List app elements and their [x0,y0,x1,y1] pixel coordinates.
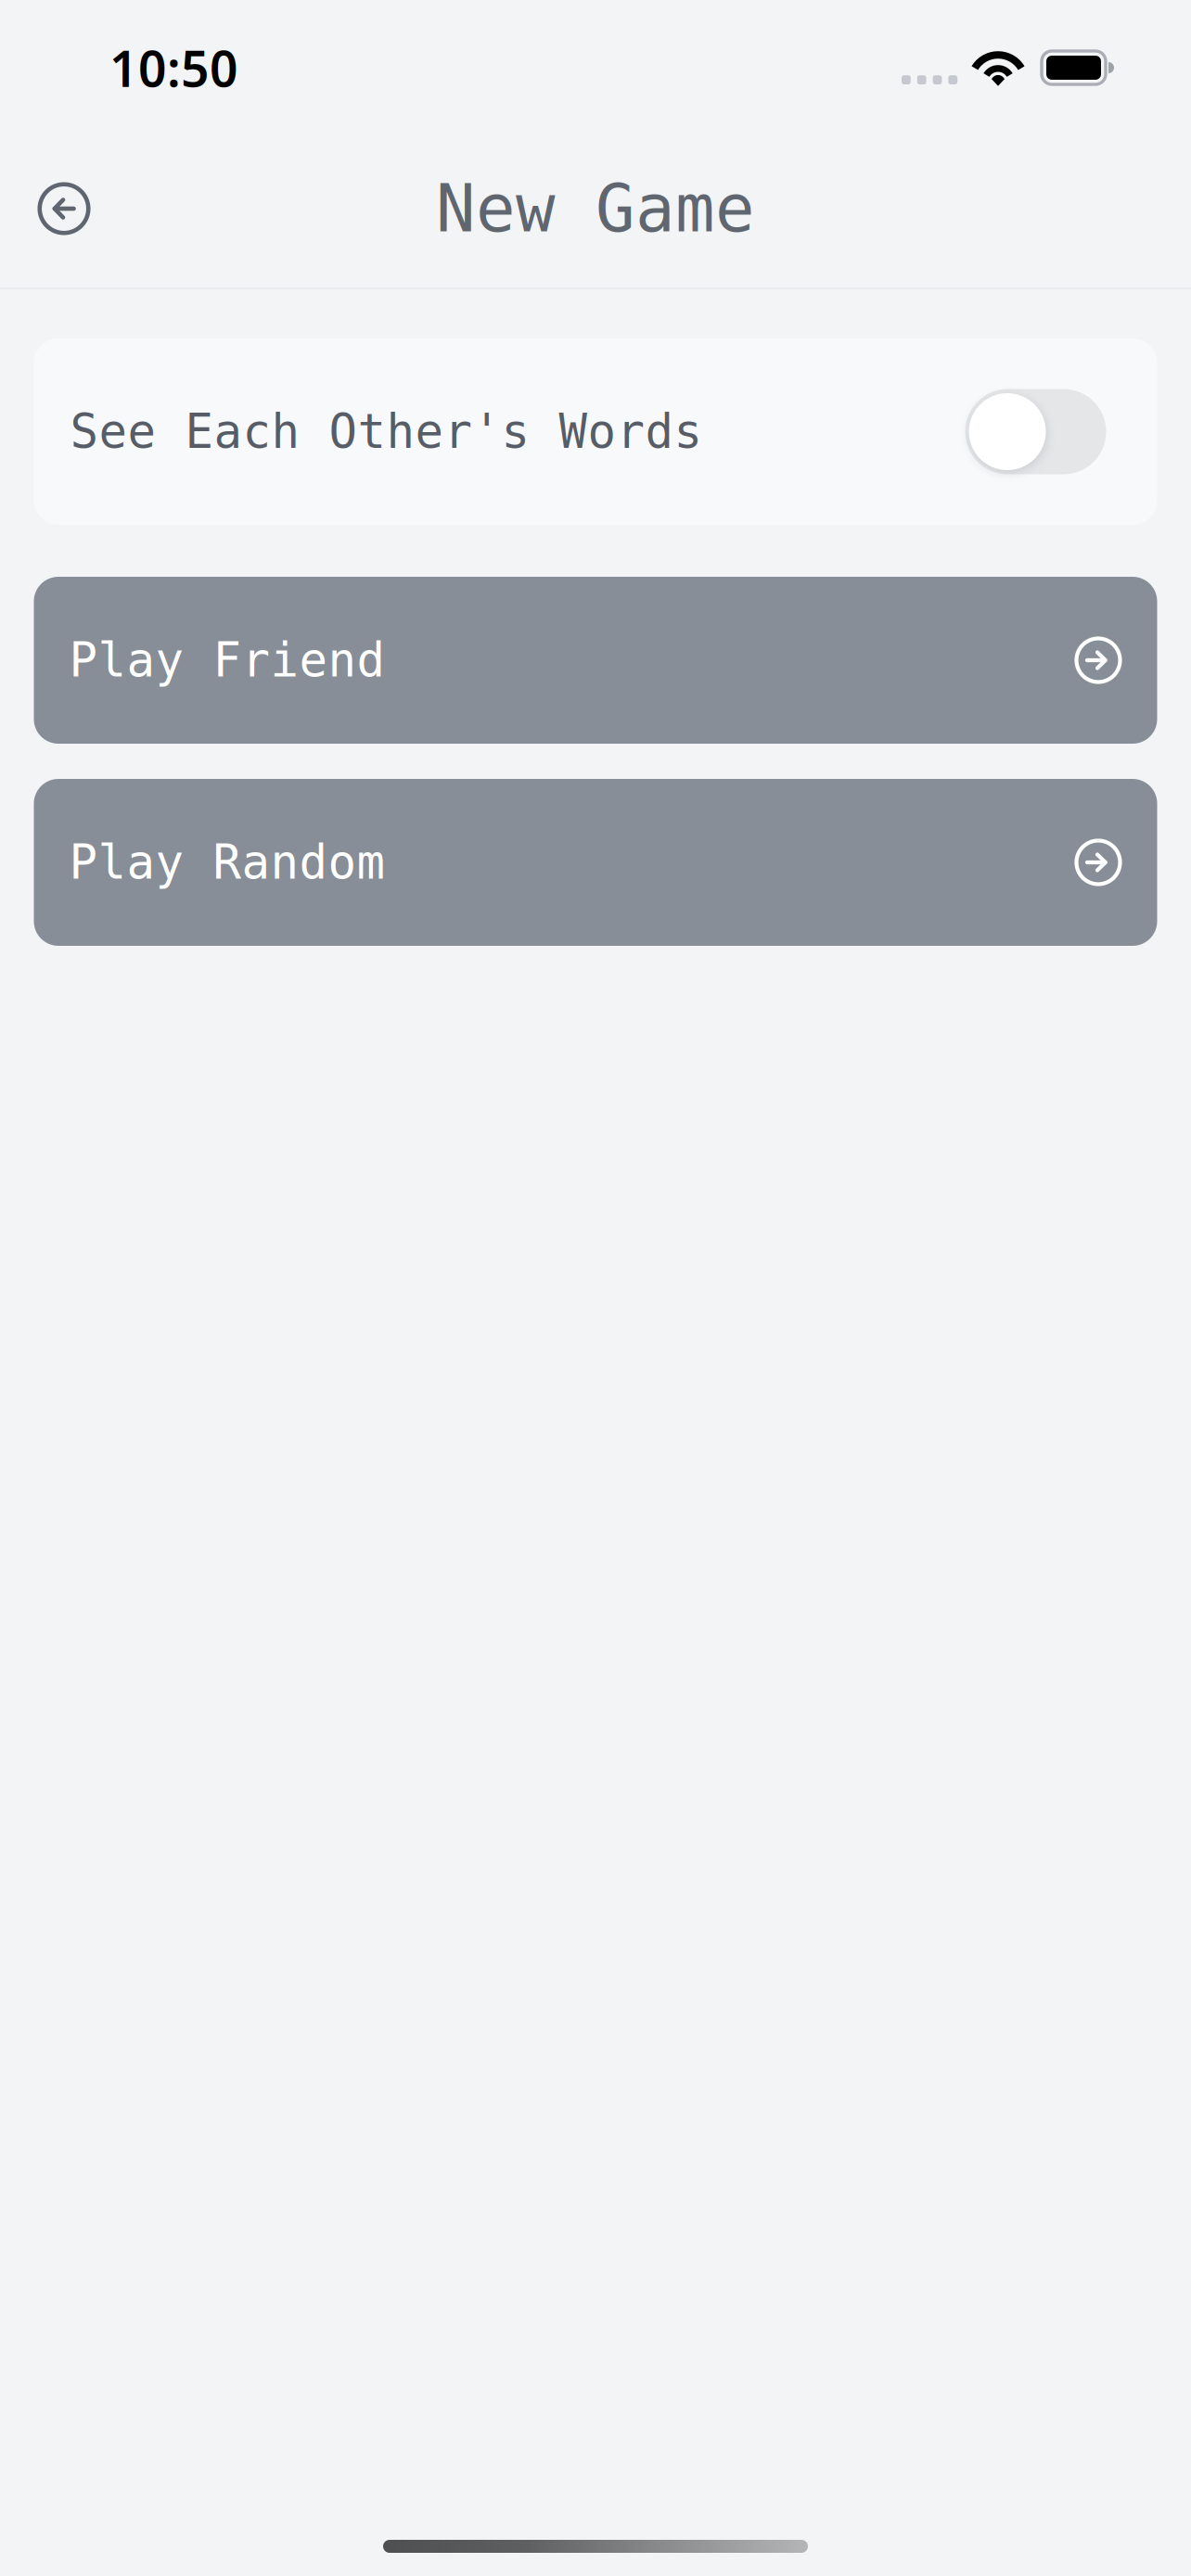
staticText: New Game [436,171,755,246]
button[interactable]: Play Friend [34,577,1157,744]
staticText: See Each Other's Words [70,405,703,458]
button[interactable]: Play Random [34,779,1157,946]
button[interactable]: See Each Other's Words [965,389,1106,474]
staticText: Play Random [69,836,385,889]
staticText: Play Friend [69,634,385,687]
button[interactable]: Back [1,144,127,274]
staticText: 10:50 [109,35,238,101]
